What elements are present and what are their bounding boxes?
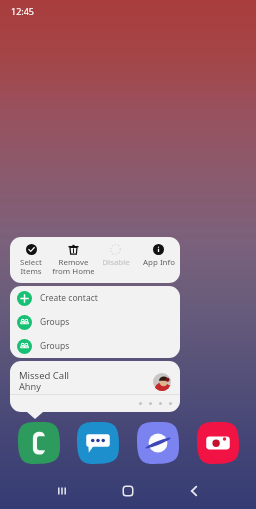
staticText: Groups xyxy=(40,340,70,352)
staticText: Ahny xyxy=(19,380,41,392)
button[interactable]: App Info xyxy=(137,237,180,268)
staticText: Create contact xyxy=(40,292,98,304)
button[interactable]: Home xyxy=(114,477,142,505)
staticText: Select Items xyxy=(20,257,42,276)
button[interactable]: Disable xyxy=(94,237,137,268)
button[interactable]: Phone xyxy=(18,422,60,464)
button[interactable]: Groups xyxy=(10,310,180,334)
button[interactable]: Internet xyxy=(137,422,179,464)
button[interactable]: Messages xyxy=(77,422,119,464)
button[interactable]: Select Items xyxy=(10,237,52,276)
button[interactable]: Groups xyxy=(10,334,180,358)
button[interactable]: Create contact xyxy=(10,286,180,310)
staticText: Remove from Home xyxy=(52,257,94,276)
button[interactable]: Remove from Home xyxy=(52,237,94,276)
staticText: Missed Call xyxy=(19,369,70,382)
staticText: App Info xyxy=(143,257,175,268)
staticText: 12:45 xyxy=(11,5,35,17)
button[interactable]: Camera xyxy=(197,422,239,464)
staticText: Groups xyxy=(40,316,70,328)
button[interactable]: Back xyxy=(180,477,208,505)
staticText: Disable xyxy=(102,257,130,268)
button[interactable]: Recents xyxy=(48,477,76,505)
button[interactable]: Missed Call xyxy=(10,361,180,412)
